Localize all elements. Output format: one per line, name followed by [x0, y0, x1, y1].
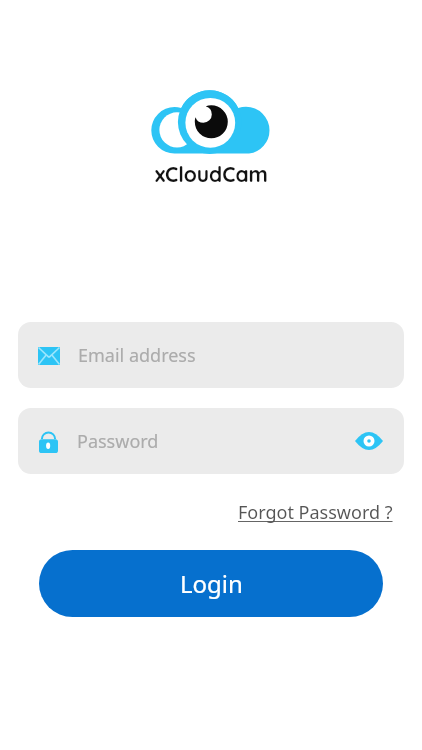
staticText: Password: [77, 429, 159, 454]
staticText: Login: [180, 567, 243, 600]
button[interactable]: Forgot Password ?: [238, 499, 393, 525]
staticText: Email address: [78, 343, 196, 368]
button[interactable]: Login: [39, 550, 383, 617]
button[interactable]: Email address: [18, 322, 404, 388]
button[interactable]: Show password: [347, 422, 391, 459]
button[interactable]: Password: [18, 408, 404, 474]
staticText: xCloudCam: [155, 161, 268, 187]
staticText: Forgot Password ?: [238, 500, 393, 525]
